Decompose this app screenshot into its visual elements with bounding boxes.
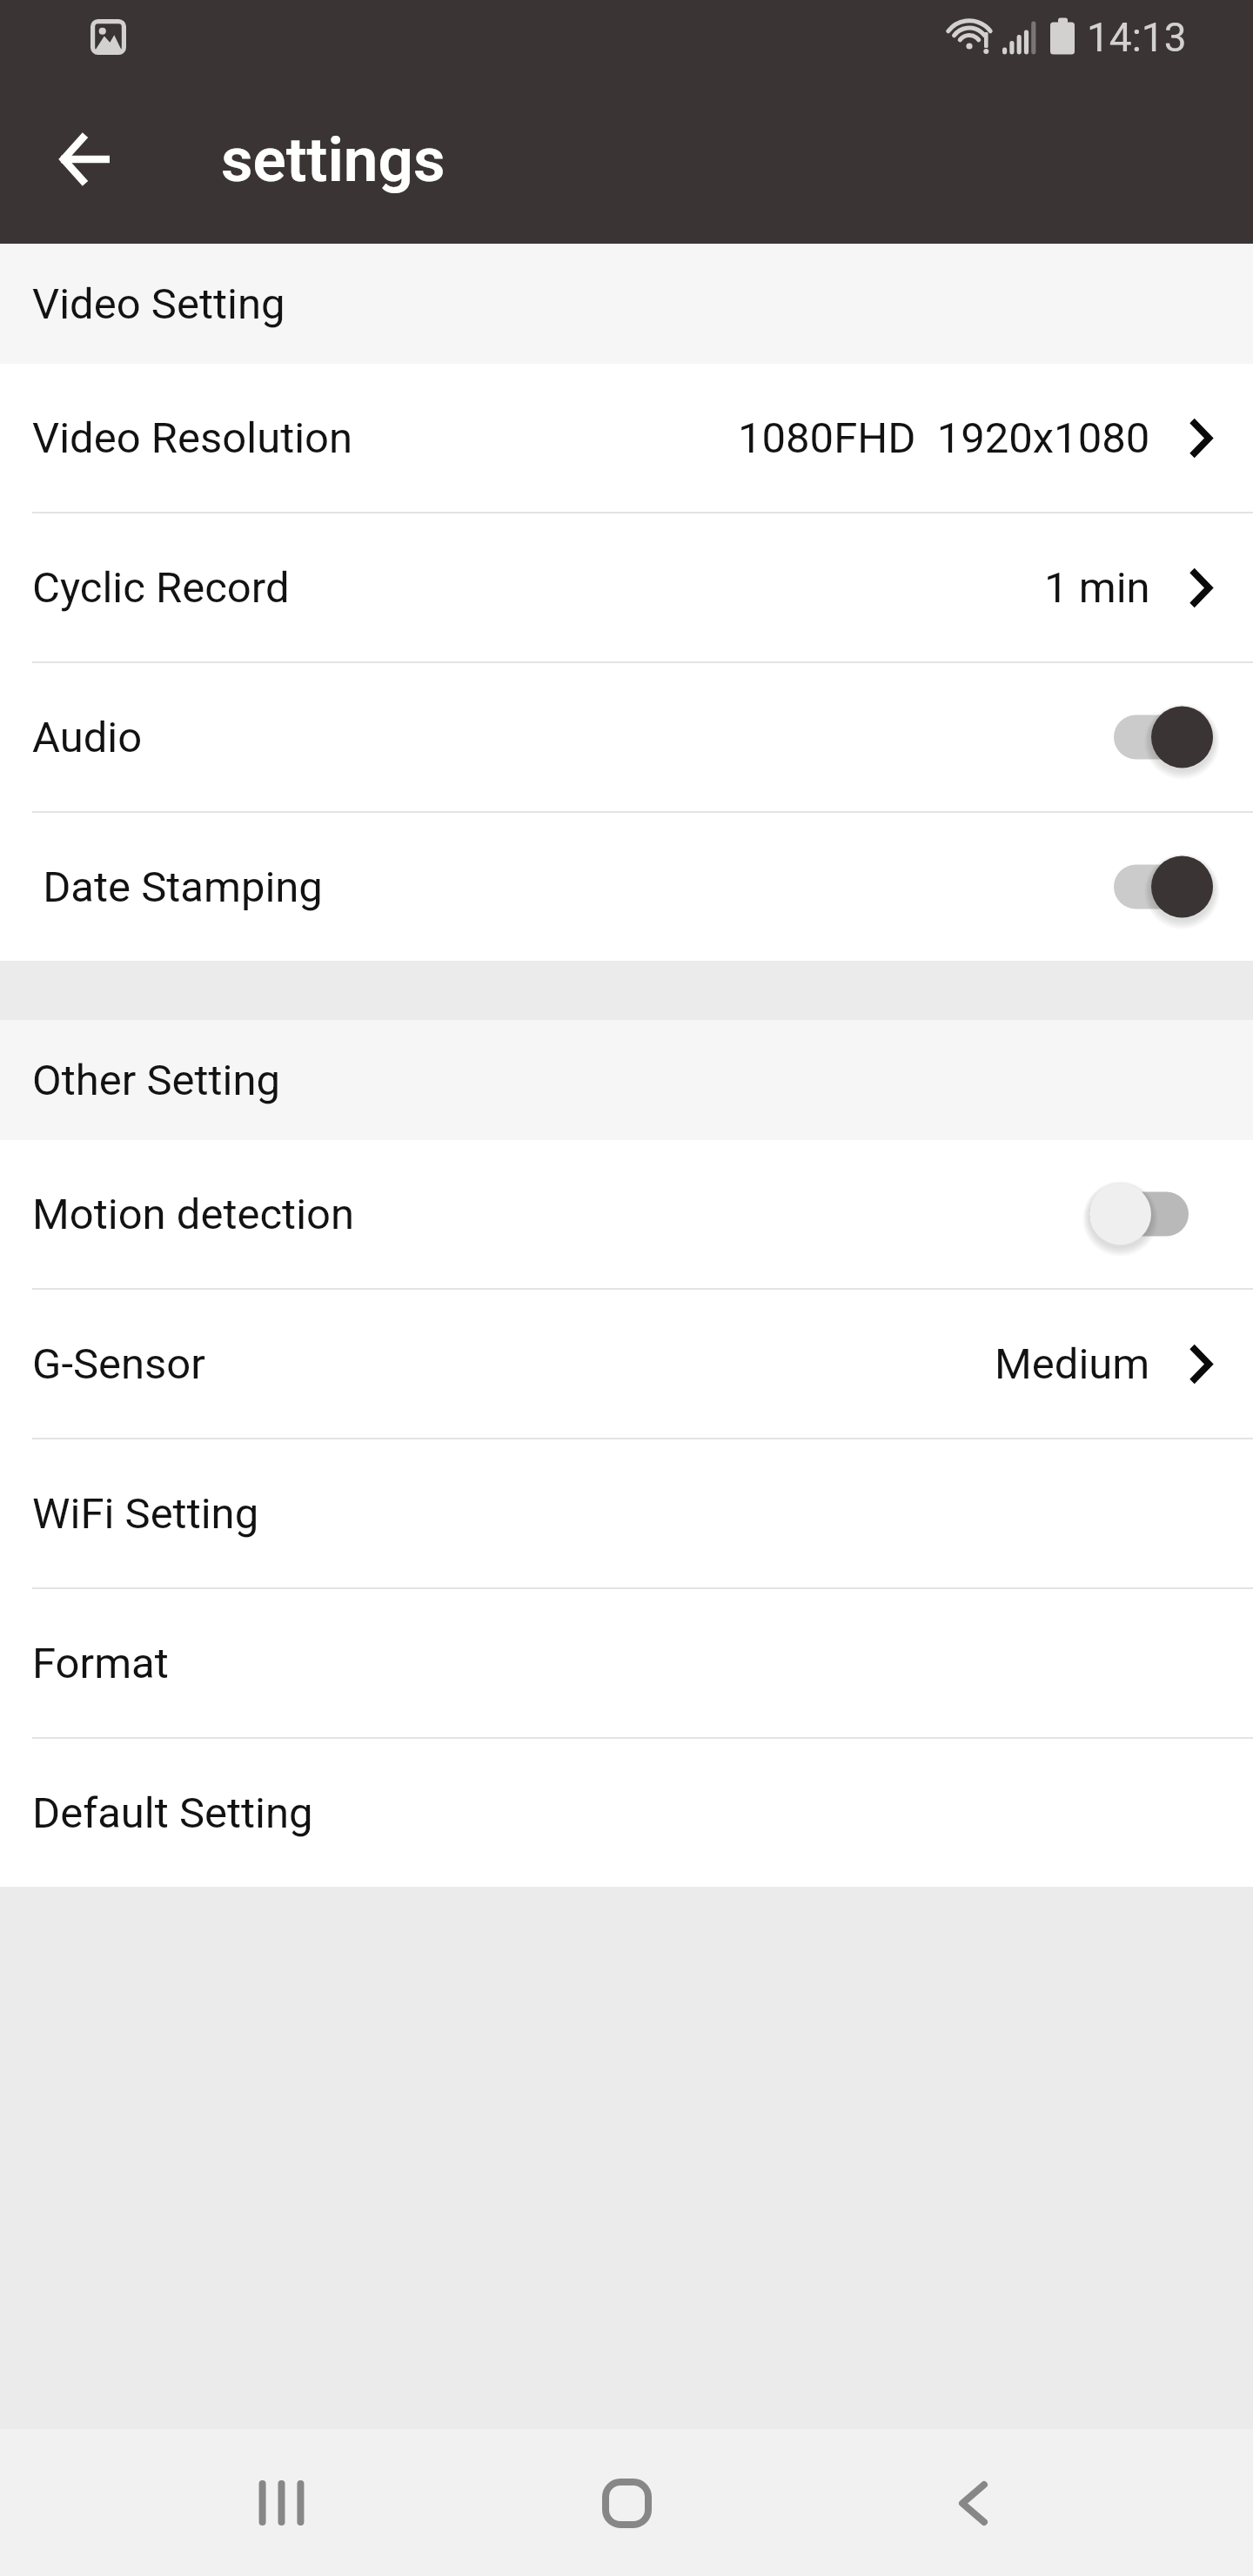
staticText: Format [32,1639,169,1688]
staticText: Other Setting [32,1056,281,1105]
button[interactable]: Motion detection [0,1140,1253,1288]
staticText: Motion detection [32,1190,355,1239]
button[interactable]: Back [908,2438,1038,2568]
button[interactable]: Date Stamping [0,813,1253,961]
button[interactable]: Format [0,1589,1253,1737]
staticText: 14:13 [1087,14,1187,61]
staticText: 1 min [1044,563,1150,613]
button[interactable]: WiFi Setting [0,1439,1253,1587]
staticText: Date Stamping [32,862,323,912]
button[interactable]: Navigate up [23,97,148,222]
staticText: Medium [995,1339,1150,1389]
button[interactable]: Audio [0,663,1253,811]
staticText: WiFi Setting [32,1489,259,1539]
staticText: Default Setting [32,1788,313,1838]
button[interactable]: Home [561,2438,692,2568]
staticText: 1080FHD 1920x1080 [738,413,1150,463]
staticText: Audio [32,713,143,762]
staticText: Video Setting [32,279,285,329]
staticText: Video Resolution [32,413,353,463]
button[interactable]: Recent apps [216,2438,346,2568]
button[interactable]: Default Setting [0,1739,1253,1887]
staticText: settings [221,124,446,196]
button[interactable]: Cyclic Record [0,513,1253,661]
staticText: G-Sensor [32,1339,205,1389]
staticText: Cyclic Record [32,563,290,613]
button[interactable]: G-Sensor [0,1290,1253,1438]
button[interactable]: Video Resolution [0,364,1253,512]
